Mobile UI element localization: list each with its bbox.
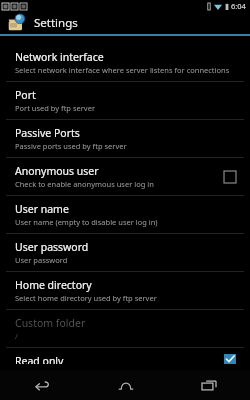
staticText: 6:04 bbox=[231, 1, 246, 11]
button[interactable]: Home directory bbox=[0, 272, 250, 309]
staticText: User password bbox=[15, 255, 68, 265]
staticText: Settings bbox=[34, 15, 78, 31]
staticText: Read only bbox=[15, 354, 64, 364]
staticText: Network interface bbox=[15, 50, 104, 64]
button[interactable]: Anonymous user bbox=[0, 158, 250, 195]
staticText: Passive ports used by ftp server bbox=[15, 141, 127, 151]
staticText: User password bbox=[15, 240, 89, 254]
button[interactable]: Network interface bbox=[0, 44, 250, 81]
staticText: Passive Ports bbox=[15, 126, 80, 140]
staticText: Custom folder bbox=[15, 316, 86, 330]
staticText: Anonymous user bbox=[15, 164, 99, 178]
staticText: User name (empty to disable user log in) bbox=[15, 217, 158, 227]
button[interactable]: User name bbox=[0, 196, 250, 233]
button[interactable]: Read only bbox=[0, 348, 250, 370]
staticText: / bbox=[15, 331, 18, 341]
staticText: Check to enable anonymous user log in bbox=[15, 179, 154, 189]
button[interactable]: Toggle setting bbox=[220, 354, 240, 364]
staticText: Port bbox=[15, 88, 36, 102]
staticText: Home directory bbox=[15, 278, 92, 292]
staticText: Port used by ftp server bbox=[15, 103, 95, 113]
button[interactable]: Custom folder bbox=[0, 310, 250, 347]
staticText: Select network interface where server li… bbox=[15, 65, 230, 75]
button[interactable]: Toggle setting bbox=[220, 167, 240, 187]
button[interactable]: User password bbox=[0, 234, 250, 271]
staticText: Select home directory used by ftp server bbox=[15, 293, 157, 303]
button[interactable]: Port bbox=[0, 82, 250, 119]
button[interactable]: Home bbox=[84, 370, 167, 400]
staticText: User name bbox=[15, 202, 69, 216]
button[interactable]: Back bbox=[0, 370, 84, 400]
button[interactable]: Passive Ports bbox=[0, 120, 250, 157]
button[interactable]: Recent apps bbox=[167, 370, 250, 400]
